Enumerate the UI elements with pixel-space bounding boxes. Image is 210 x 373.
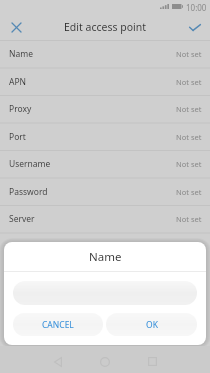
staticText: 10:00	[186, 2, 207, 13]
staticText: Not set	[176, 77, 202, 87]
button[interactable]: Username	[0, 150, 210, 178]
staticText: Proxy	[9, 103, 32, 115]
staticText: Not set	[176, 49, 202, 59]
staticText: APN	[9, 76, 27, 88]
staticText: Name	[9, 48, 33, 60]
button[interactable]: Name	[0, 40, 210, 68]
staticText: Server	[9, 213, 35, 225]
staticText: Not set	[176, 214, 202, 224]
staticText: Not set	[176, 159, 202, 169]
button[interactable]: Proxy	[0, 95, 210, 123]
button[interactable]: APN	[0, 68, 210, 96]
staticText: Not set	[176, 187, 202, 197]
staticText: Password	[9, 186, 48, 198]
button[interactable]: Server	[0, 205, 210, 233]
staticText: Username	[9, 158, 51, 170]
button[interactable]: CANCEL	[13, 313, 103, 336]
button[interactable]: Password	[0, 178, 210, 206]
button[interactable]	[13, 281, 197, 305]
button[interactable]: OK	[106, 313, 197, 336]
staticText: Edit access point	[64, 20, 147, 34]
button[interactable]: Close	[4, 15, 28, 39]
staticText: Not set	[176, 104, 202, 114]
staticText: Name	[89, 249, 122, 265]
staticText: Port	[9, 131, 26, 143]
staticText: OK	[146, 319, 158, 331]
staticText: Not set	[176, 132, 202, 142]
button[interactable]: Port	[0, 123, 210, 151]
staticText: CANCEL	[42, 319, 74, 331]
button[interactable]: Save	[183, 15, 207, 39]
